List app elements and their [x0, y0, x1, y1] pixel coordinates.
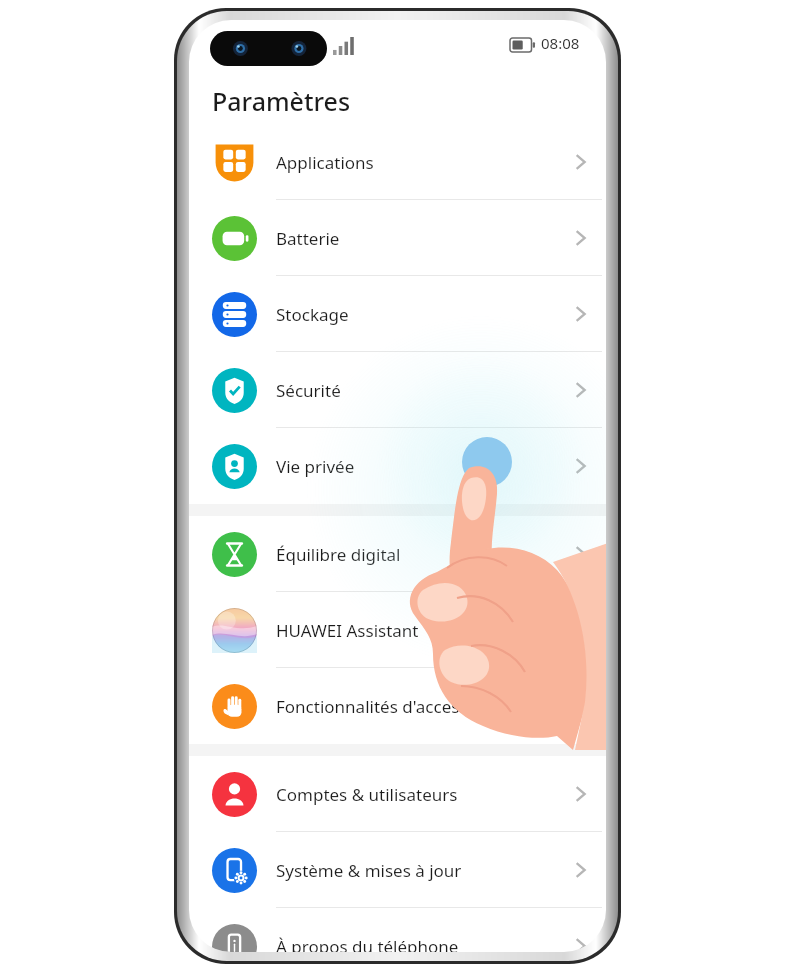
- button[interactable]: Batterie: [189, 200, 606, 276]
- button[interactable]: Sécurité: [189, 352, 606, 428]
- staticText: Paramètres: [212, 84, 351, 118]
- button[interactable]: Vie privée: [189, 428, 606, 504]
- button[interactable]: Équilibre digital: [189, 516, 606, 592]
- button[interactable]: HUAWEI Assistant: [189, 592, 606, 668]
- staticText: Vie privée: [276, 455, 575, 478]
- button[interactable]: Applications: [189, 124, 606, 200]
- staticText: Sécurité: [276, 379, 575, 402]
- button[interactable]: Comptes & utilisateurs: [189, 756, 606, 832]
- button[interactable]: Stockage: [189, 276, 606, 352]
- staticText: Applications: [276, 151, 575, 174]
- staticText: 08:08: [541, 33, 580, 53]
- staticText: Stockage: [276, 303, 575, 326]
- button[interactable]: À propos du téléphone: [189, 908, 606, 952]
- button[interactable]: Système & mises à jour: [189, 832, 606, 908]
- staticText: Fonctionnalités d'accessibilité: [276, 695, 575, 718]
- staticText: HUAWEI Assistant: [276, 619, 575, 642]
- staticText: Système & mises à jour: [276, 859, 575, 882]
- staticText: À propos du téléphone: [276, 935, 575, 952]
- button[interactable]: Fonctionnalités d'accessibilité: [189, 668, 606, 744]
- staticText: Équilibre digital: [276, 543, 575, 566]
- staticText: Comptes & utilisateurs: [276, 783, 575, 806]
- staticText: Batterie: [276, 227, 575, 250]
